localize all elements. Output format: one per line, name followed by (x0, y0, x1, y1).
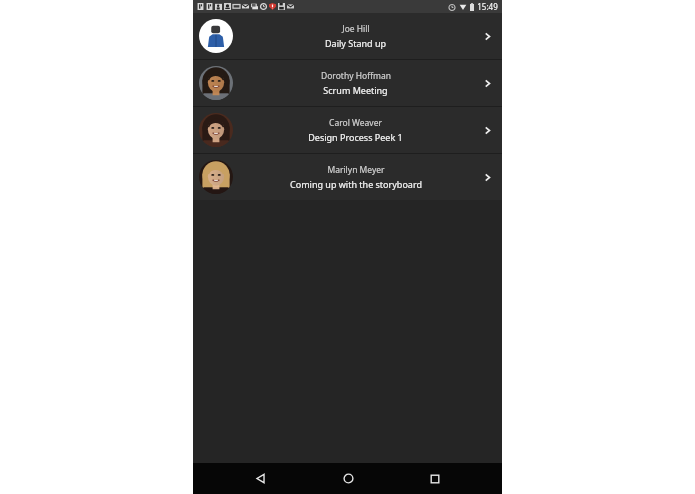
staticText: Daily Stand up (325, 37, 386, 49)
staticText: Scrum Meeting (323, 84, 388, 96)
staticText: Dorothy Hoffman (321, 70, 391, 82)
staticText: 15:49 (477, 1, 498, 12)
button[interactable]: Carol Weaver (193, 107, 502, 153)
button[interactable]: Dorothy Hoffman (193, 60, 502, 106)
button[interactable]: Marilyn Meyer (193, 154, 502, 200)
staticText: Coming up with the storyboard (290, 178, 422, 190)
button[interactable]: Recent apps (415, 463, 455, 494)
button[interactable]: Back (240, 463, 280, 494)
other: Open Joe Hill (478, 27, 496, 45)
staticText: Marilyn Meyer (327, 164, 385, 176)
staticText: Design Process Peek 1 (308, 131, 403, 143)
button[interactable]: Joe Hill (193, 13, 502, 59)
staticText: Joe Hill (342, 23, 370, 35)
other: Open Dorothy Hoffman (478, 74, 496, 92)
button[interactable]: Home (328, 463, 368, 494)
staticText: Carol Weaver (329, 117, 382, 129)
other: Open Carol Weaver (478, 121, 496, 139)
other: Open Marilyn Meyer (478, 168, 496, 186)
